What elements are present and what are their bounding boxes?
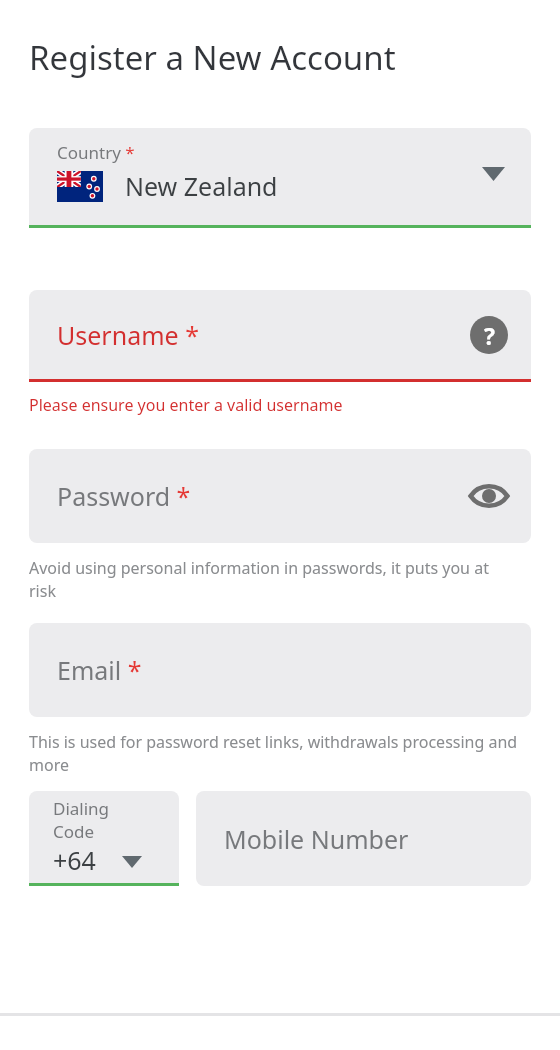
staticText: Code xyxy=(53,820,95,843)
button[interactable]: Show password xyxy=(467,474,511,518)
staticText: Username * xyxy=(57,318,199,352)
staticText: ? xyxy=(484,320,495,351)
staticText: Dialing xyxy=(53,797,110,820)
staticText: Email * xyxy=(57,653,142,687)
button[interactable]: Mobile Number xyxy=(196,791,531,886)
button[interactable]: Email * xyxy=(29,623,531,717)
staticText: Password * xyxy=(57,479,191,513)
staticText: Avoid using personal information in pass… xyxy=(29,557,520,602)
staticText: +64 xyxy=(53,843,96,877)
button[interactable]: Username * xyxy=(29,290,531,379)
staticText: Country * xyxy=(57,141,135,164)
staticText: Register a New Account xyxy=(29,35,396,80)
staticText: This is used for password reset links, w… xyxy=(29,731,520,776)
button[interactable]: Dialing xyxy=(29,791,179,886)
staticText: Mobile Number xyxy=(224,822,409,856)
staticText: Please ensure you enter a valid username xyxy=(29,394,343,416)
staticText: New Zealand xyxy=(125,169,278,203)
button[interactable]: Country * xyxy=(29,128,531,228)
button[interactable]: Password * xyxy=(29,449,531,543)
button[interactable]: Help about username xyxy=(469,315,509,355)
